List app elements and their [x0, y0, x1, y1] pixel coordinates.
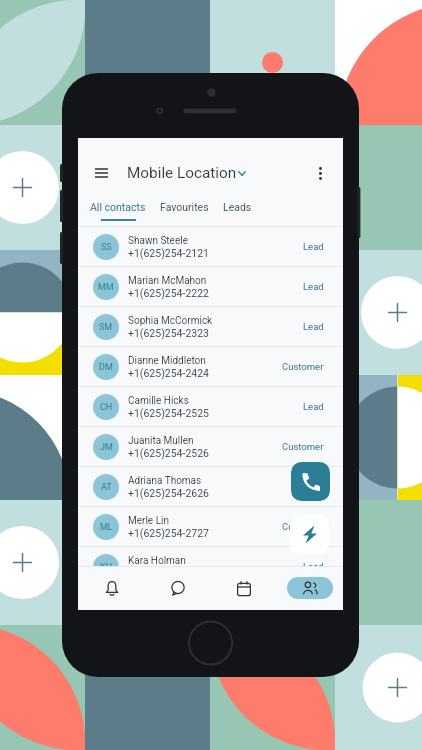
- staticText: Shawn Steele: [128, 235, 188, 247]
- staticText: ML: [100, 522, 113, 533]
- button[interactable]: ML: [78, 507, 343, 546]
- staticText: Leads: [223, 201, 252, 213]
- staticText: Customer: [282, 361, 324, 372]
- button[interactable]: KH: [78, 547, 343, 586]
- staticText: +1(625)254-2323: [128, 327, 210, 339]
- staticText: JM: [100, 442, 113, 453]
- staticText: MM: [98, 282, 114, 293]
- staticText: Marian McMahon: [128, 275, 207, 287]
- staticText: Camille Hicks: [128, 395, 189, 407]
- button[interactable]: CH: [78, 387, 343, 426]
- button[interactable]: DM: [78, 347, 343, 386]
- button[interactable]: Quick action: [290, 515, 329, 554]
- staticText: AT: [101, 482, 112, 493]
- staticText: +1(625)254-2727: [128, 527, 210, 539]
- staticText: +1(625)254-2626: [128, 487, 210, 499]
- staticText: Merle Lin: [128, 515, 169, 527]
- staticText: Adriana Thomas: [128, 475, 202, 487]
- staticText: +1(625)254-2526: [128, 447, 210, 459]
- staticText: SS: [101, 242, 112, 253]
- button[interactable]: Call: [291, 462, 330, 501]
- staticText: Lead: [303, 561, 324, 572]
- staticText: Mobile Location: [127, 164, 237, 182]
- staticText: DM: [99, 362, 113, 373]
- button[interactable]: AT: [78, 467, 343, 506]
- staticText: Lead: [303, 321, 324, 332]
- staticText: Lead: [303, 241, 324, 252]
- button[interactable]: All contacts: [83, 197, 153, 221]
- staticText: Juanita Mullen: [128, 435, 194, 447]
- staticText: Lead: [303, 401, 324, 412]
- button[interactable]: More options: [305, 158, 335, 188]
- staticText: +1(625)254-2121: [128, 247, 210, 259]
- button[interactable]: Contacts: [287, 577, 333, 599]
- button[interactable]: Favourites: [153, 197, 216, 219]
- staticText: +1(625)254-2525: [128, 407, 210, 419]
- button[interactable]: Calendar: [211, 566, 277, 610]
- staticText: Lead: [303, 481, 324, 492]
- button[interactable]: Leads: [216, 197, 259, 219]
- button[interactable]: Open navigation menu: [84, 156, 118, 190]
- staticText: Favourites: [160, 201, 209, 213]
- button[interactable]: SM: [78, 307, 343, 346]
- button[interactable]: Messages: [145, 566, 211, 610]
- staticText: +1(625)254-2222: [128, 287, 210, 299]
- staticText: +1(625)254-2424: [128, 367, 210, 379]
- staticText: Dianne Middleton: [128, 355, 206, 367]
- staticText: Customer: [282, 441, 324, 452]
- staticText: Kara Holman: [128, 555, 186, 567]
- staticText: All contacts: [90, 201, 146, 213]
- button[interactable]: Mobile Location: [127, 164, 246, 182]
- staticText: Customer: [282, 521, 324, 532]
- button[interactable]: JM: [78, 427, 343, 466]
- button[interactable]: SS: [78, 227, 343, 266]
- staticText: CH: [100, 402, 113, 413]
- staticText: SM: [99, 322, 113, 333]
- staticText: Sophia McCormick: [128, 315, 213, 327]
- staticText: Lead: [303, 281, 324, 292]
- button[interactable]: Notifications: [78, 566, 145, 610]
- button[interactable]: MM: [78, 267, 343, 306]
- staticText: KH: [100, 562, 113, 573]
